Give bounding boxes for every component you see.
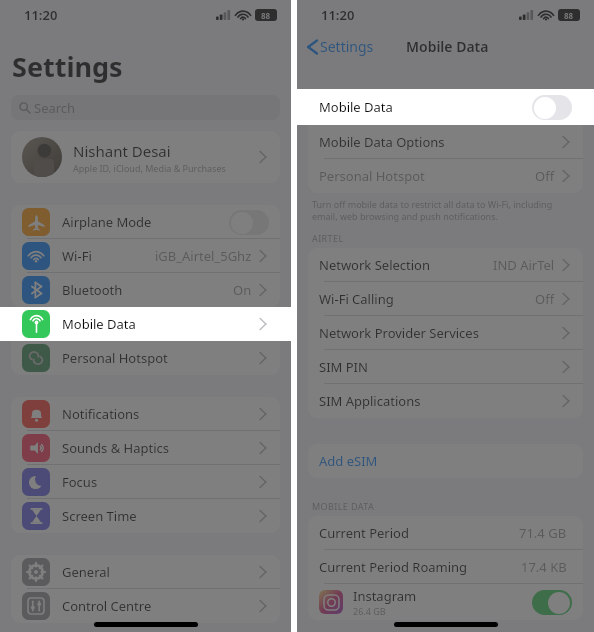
staticText: 88: [261, 10, 271, 21]
staticText: Instagram: [353, 587, 417, 605]
button[interactable]: Mobile Data: [0, 307, 291, 341]
button[interactable]: Add eSIM: [308, 444, 583, 478]
button[interactable]: Personal Hotspot: [308, 159, 583, 193]
staticText: 11:20: [321, 6, 355, 24]
staticText: Bluetooth: [62, 281, 233, 299]
staticText: Mobile Data: [62, 315, 257, 333]
button[interactable]: Toggle: [532, 95, 572, 120]
staticText: Search: [34, 99, 76, 117]
button[interactable]: Notifications: [11, 397, 280, 431]
staticText: Wi-Fi: [62, 247, 155, 265]
button[interactable]: Control Centre: [11, 589, 280, 623]
button[interactable]: Network Selection: [308, 248, 583, 282]
staticText: Personal Hotspot: [62, 349, 257, 367]
button[interactable]: Toggle: [532, 590, 572, 615]
button[interactable]: Current Period Roaming: [308, 550, 583, 584]
button[interactable]: Sounds & Haptics: [11, 431, 280, 465]
button[interactable]: Mobile Data: [308, 92, 583, 122]
button[interactable]: Search: [11, 95, 280, 120]
staticText: Mobile Data Options: [319, 133, 560, 151]
button[interactable]: Bluetooth: [11, 273, 280, 307]
staticText: iGB_Airtel_5Ghz: [155, 247, 252, 265]
staticText: Airplane Mode: [62, 213, 229, 231]
staticText: Network Provider Services: [319, 324, 560, 342]
staticText: SIM Applications: [319, 392, 560, 410]
button[interactable]: SIM PIN: [308, 350, 583, 384]
staticText: Apple ID, iCloud, Media & Purchases: [73, 162, 226, 174]
staticText: 88: [564, 10, 574, 21]
button[interactable]: Wi-Fi: [11, 239, 280, 273]
button[interactable]: Nishant Desai: [11, 131, 280, 183]
staticText: Settings: [12, 48, 123, 85]
button[interactable]: SIM Applications: [308, 384, 583, 418]
staticText: Mobile Data: [319, 98, 532, 116]
button[interactable]: General: [11, 555, 280, 589]
staticText: Notifications: [62, 405, 257, 423]
button[interactable]: Wi-Fi Calling: [308, 282, 583, 316]
button[interactable]: Mobile Data Options: [308, 125, 583, 159]
button[interactable]: Network Provider Services: [308, 316, 583, 350]
staticText: Control Centre: [62, 597, 257, 615]
staticText: 26.4 GB: [353, 605, 386, 617]
staticText: Personal Hotspot: [319, 167, 535, 185]
staticText: Current Period: [319, 524, 519, 542]
staticText: Focus: [62, 473, 257, 491]
staticText: Turn off mobile data to restrict all dat…: [312, 198, 553, 222]
staticText: AIRTEL: [312, 232, 344, 244]
staticText: Sounds & Haptics: [62, 439, 257, 457]
button[interactable]: Airplane Mode: [11, 205, 280, 239]
staticText: Off: [535, 167, 555, 185]
staticText: SIM PIN: [319, 358, 560, 376]
staticText: Wi-Fi Calling: [319, 290, 535, 308]
button[interactable]: Screen Time: [11, 499, 280, 533]
staticText: Nishant Desai: [73, 141, 171, 161]
staticText: Mobile Data: [406, 37, 489, 56]
staticText: 71.4 GB: [519, 524, 567, 542]
staticText: Screen Time: [62, 507, 257, 525]
button[interactable]: Personal Hotspot: [11, 341, 280, 375]
staticText: Settings: [320, 37, 374, 56]
staticText: Off: [535, 290, 555, 308]
button[interactable]: Back to Settings: [297, 33, 382, 60]
staticText: Current Period Roaming: [319, 558, 521, 576]
staticText: 17.4 KB: [521, 558, 567, 576]
button[interactable]: Current Period: [308, 516, 583, 550]
staticText: MOBILE DATA: [312, 500, 375, 512]
staticText: Network Selection: [319, 256, 493, 274]
button[interactable]: Instagram: [308, 584, 583, 620]
staticText: 11:20: [24, 6, 58, 24]
button[interactable]: Focus: [11, 465, 280, 499]
staticText: IND AirTel: [493, 256, 555, 274]
button[interactable]: Toggle: [229, 210, 269, 235]
staticText: General: [62, 563, 257, 581]
staticText: On: [233, 281, 252, 299]
staticText: Add eSIM: [319, 452, 572, 470]
